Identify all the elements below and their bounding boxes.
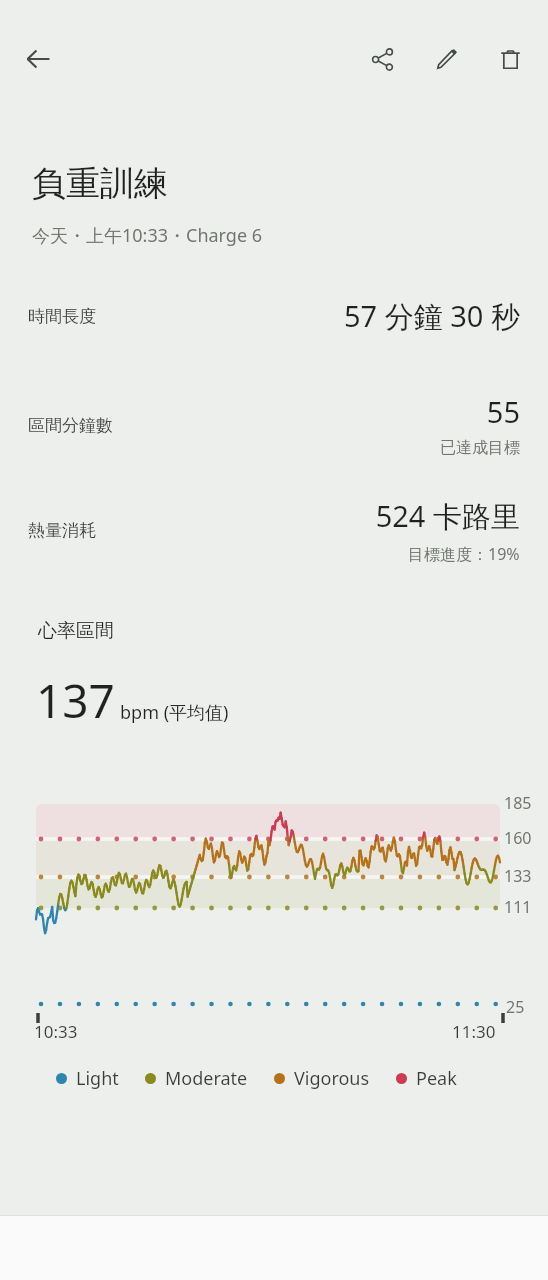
button[interactable]: 熱量消耗 [28, 496, 520, 565]
staticText: 137 [36, 669, 115, 732]
staticText: Light [76, 1066, 119, 1091]
staticText: 524 卡路里 [375, 496, 520, 536]
button[interactable]: Moderate [145, 1066, 248, 1091]
staticText: 133 [504, 865, 532, 887]
staticText: 已達成目標 [440, 438, 520, 458]
button[interactable]: Vigorous [274, 1066, 370, 1091]
staticText: 11:30 [452, 1020, 496, 1043]
staticText: 10:33 [34, 1020, 78, 1043]
staticText: 25 [506, 996, 525, 1018]
button[interactable]: Delete [486, 35, 534, 83]
staticText: 55 [486, 392, 520, 431]
staticText: 185 [504, 792, 532, 814]
button[interactable]: 區間分鐘數 [28, 392, 520, 458]
button[interactable]: Share [358, 35, 406, 83]
button[interactable]: Back [14, 35, 62, 83]
staticText: 160 [504, 827, 532, 849]
staticText: 目標進度：19% [408, 543, 520, 565]
staticText: Moderate [165, 1066, 248, 1091]
staticText: 負重訓練 [32, 162, 168, 205]
button[interactable]: 時間長度 [28, 296, 520, 336]
button[interactable]: Light [56, 1066, 119, 1091]
staticText: 熱量消耗 [28, 520, 96, 541]
staticText: bpm (平均值) [120, 700, 229, 725]
staticText: 區間分鐘數 [28, 415, 113, 436]
staticText: Vigorous [294, 1066, 370, 1091]
staticText: 111 [504, 896, 532, 918]
button[interactable]: Edit [422, 35, 470, 83]
staticText: 時間長度 [28, 306, 96, 327]
staticText: 今天・上午10:33・Charge 6 [32, 223, 263, 248]
staticText: Peak [416, 1066, 457, 1091]
button[interactable]: Peak [396, 1066, 457, 1091]
staticText: 57 分鐘 30 秒 [344, 296, 520, 336]
staticText: 心率區間 [38, 619, 114, 643]
